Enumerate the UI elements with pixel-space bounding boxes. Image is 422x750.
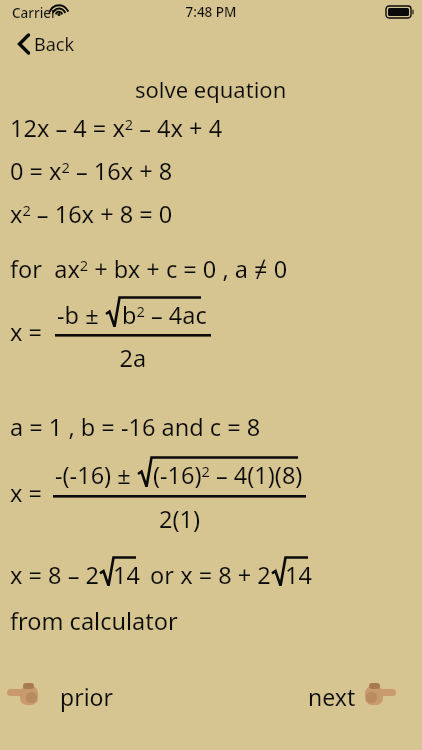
button[interactable]: next xyxy=(286,672,414,720)
button[interactable] xyxy=(4,26,100,62)
button[interactable]: prior xyxy=(8,672,138,720)
